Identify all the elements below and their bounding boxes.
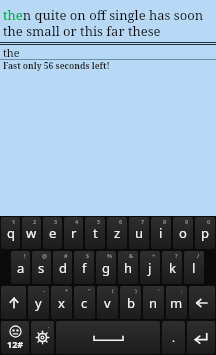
button[interactable]: Shift (1, 286, 26, 319)
staticText: 12# (7, 338, 24, 350)
staticText: 5 (97, 218, 101, 225)
button[interactable]: Space (56, 321, 160, 354)
staticText: 2 (33, 218, 37, 225)
button[interactable]: 0 (195, 217, 215, 249)
button[interactable]: 4 (64, 217, 83, 249)
staticText: f (82, 259, 87, 277)
button[interactable]: + (140, 251, 160, 284)
button[interactable]: 8 (151, 217, 171, 249)
button[interactable]: 3 (43, 217, 62, 249)
staticText: 3 (54, 218, 58, 225)
staticText: " (88, 287, 91, 294)
button[interactable]: Symbols and emoji (1, 321, 29, 354)
staticText: 0 (207, 218, 211, 225)
staticText: e (49, 224, 57, 242)
staticText: b (127, 294, 135, 312)
button[interactable]: the (0, 45, 216, 59)
staticText: 9 (185, 218, 189, 225)
staticText: m (170, 294, 183, 312)
staticText: g (102, 259, 110, 277)
staticText: n (149, 294, 158, 312)
staticText: u (135, 224, 144, 242)
staticText: y (35, 294, 42, 312)
staticText: w (26, 224, 37, 242)
staticText: Fast only 56 seconds left! (3, 60, 110, 72)
staticText: s (38, 259, 45, 277)
button[interactable]: Backspace (189, 286, 215, 319)
staticText: 8 (163, 218, 167, 225)
staticText: the (3, 45, 20, 59)
staticText: 1 (12, 218, 16, 225)
staticText: 6 (119, 218, 123, 225)
staticText: a (17, 259, 25, 277)
button[interactable]: - (28, 286, 49, 319)
staticText: ' (158, 287, 160, 294)
staticText: z (114, 224, 121, 242)
staticText: * (65, 287, 68, 294)
button[interactable]: Enter (187, 321, 215, 354)
staticText: c (81, 294, 88, 312)
staticText: + (152, 252, 156, 259)
staticText: v (104, 294, 111, 312)
button[interactable]: 7 (129, 217, 149, 249)
button[interactable]: Period (162, 321, 185, 354)
button[interactable]: ( (97, 286, 118, 319)
button[interactable]: # (53, 251, 72, 284)
staticText: 7 (141, 218, 145, 225)
button[interactable]: % (96, 251, 116, 284)
staticText: ) (135, 287, 137, 294)
button[interactable]: Settings (31, 321, 54, 354)
button[interactable]: * (51, 286, 72, 319)
button[interactable]: & (118, 251, 138, 284)
button[interactable]: / (184, 251, 204, 284)
staticText: l (192, 259, 196, 277)
button[interactable]: $ (74, 251, 94, 284)
staticText: then quite on off single has soon the sm… (3, 6, 212, 39)
button[interactable]: ' (143, 286, 164, 319)
staticText: 4 (75, 218, 79, 225)
button[interactable]: ! (11, 251, 30, 284)
staticText: k (169, 259, 176, 277)
staticText: x (58, 294, 65, 312)
button[interactable]: 9 (173, 217, 193, 249)
staticText: / (197, 252, 200, 259)
button[interactable]: 2 (22, 217, 41, 249)
staticText: . (172, 330, 175, 345)
staticText: p (201, 224, 209, 242)
staticText: # (64, 252, 68, 259)
button[interactable]: ? (162, 251, 182, 284)
staticText: h (124, 259, 133, 277)
staticText: ! (24, 252, 26, 259)
staticText: i (159, 224, 163, 242)
button[interactable]: ) (120, 286, 141, 319)
staticText: q (7, 224, 15, 242)
staticText: - (43, 287, 45, 294)
button[interactable]: " (74, 286, 95, 319)
button[interactable]: @ (32, 251, 51, 284)
staticText: d (59, 259, 67, 277)
button[interactable]: : (166, 286, 187, 319)
staticText: j (148, 259, 152, 277)
staticText: r (71, 224, 77, 242)
button[interactable]: 6 (107, 217, 127, 249)
staticText: : (181, 287, 183, 294)
button[interactable]: 1 (1, 217, 20, 249)
staticText: ? (175, 252, 178, 259)
staticText: o (179, 224, 187, 242)
staticText: ( (112, 287, 114, 294)
staticText: & (129, 252, 134, 259)
staticText: @ (42, 252, 47, 259)
staticText: $ (86, 252, 90, 259)
staticText: % (107, 252, 112, 259)
button[interactable]: 5 (85, 217, 105, 249)
staticText: t (93, 224, 98, 242)
staticText: , (48, 322, 50, 329)
